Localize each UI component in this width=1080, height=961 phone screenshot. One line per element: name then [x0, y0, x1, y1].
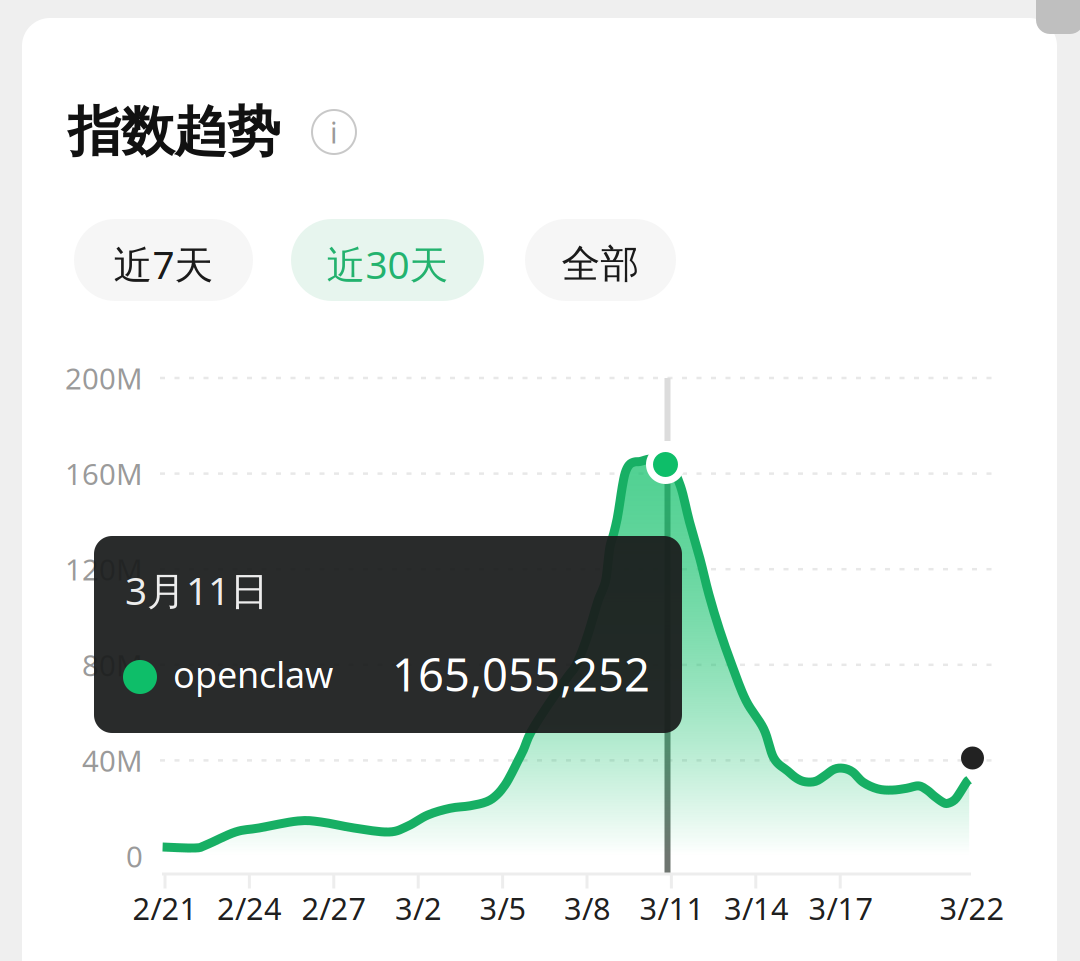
staticText: 3/17 [808, 888, 873, 928]
button[interactable]: 近30天 [291, 219, 484, 301]
staticText: 3/11 [639, 888, 704, 928]
staticText: 3/2 [395, 888, 442, 928]
staticText: 全部 [561, 240, 639, 288]
staticText: 2/27 [301, 888, 366, 928]
staticText: i [330, 112, 338, 151]
staticText: 3/8 [564, 888, 611, 928]
staticText: 近30天 [326, 238, 448, 290]
staticText: 近7天 [113, 238, 213, 290]
button[interactable]: About index trend [312, 110, 356, 154]
staticText: 3/14 [724, 888, 789, 928]
staticText: 3/5 [479, 888, 526, 928]
staticText: 指数趋势 [68, 99, 280, 165]
button[interactable]: 近7天 [74, 219, 253, 301]
staticText: 160M [65, 454, 143, 493]
staticText: 3月11日 [125, 564, 269, 616]
staticText: 2/24 [217, 888, 282, 928]
staticText: 120M [65, 550, 143, 589]
staticText: 2/21 [132, 888, 197, 928]
button[interactable]: 全部 [525, 219, 676, 301]
staticText: 40M [82, 741, 143, 780]
staticText: 200M [65, 358, 143, 397]
staticText: 165,055,252 [392, 644, 650, 704]
staticText: 80M [82, 645, 143, 684]
staticText: openclaw [173, 650, 333, 698]
staticText: 3/22 [939, 888, 1004, 928]
staticText: 0 [126, 836, 143, 875]
